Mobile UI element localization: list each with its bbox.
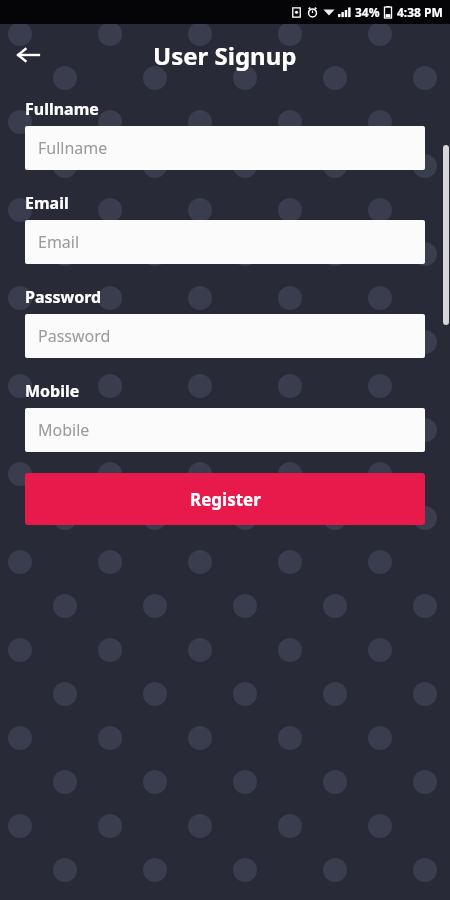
staticText: 34% (355, 4, 380, 20)
button[interactable]: Fullname (25, 126, 425, 170)
button[interactable]: Email (25, 220, 425, 264)
staticText: 4:38 PM (397, 4, 443, 20)
staticText: Mobile (25, 380, 80, 402)
staticText: Fullname (38, 137, 108, 159)
staticText: Email (38, 231, 80, 253)
button[interactable]: Back (6, 33, 50, 77)
button[interactable]: Register (25, 473, 425, 525)
staticText: Fullname (25, 98, 99, 120)
staticText: Password (38, 325, 111, 347)
staticText: Password (25, 286, 102, 308)
button[interactable]: Password (25, 314, 425, 358)
staticText: Email (25, 192, 69, 214)
staticText: User Signup (153, 39, 297, 72)
staticText: Register (190, 488, 261, 511)
button[interactable]: Mobile (25, 408, 425, 452)
staticText: Mobile (38, 419, 90, 441)
